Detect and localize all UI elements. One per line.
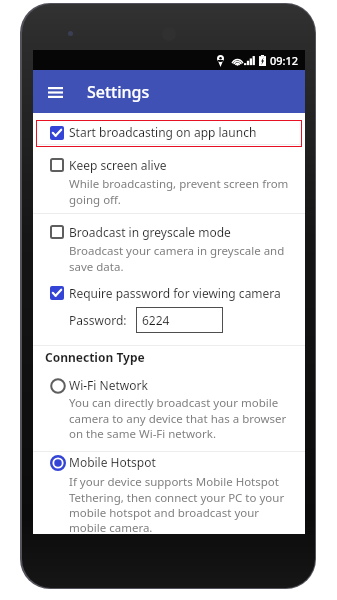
button[interactable]: Start broadcasting on app launch (36, 120, 302, 147)
staticText: Connection Type (45, 349, 145, 365)
staticText: Require password for viewing camera (69, 285, 281, 301)
staticText: Start broadcasting on app launch (69, 124, 257, 140)
staticText: Settings (87, 81, 150, 103)
staticText: If your device supports Mobile Hotspot T… (69, 474, 291, 535)
staticText: While broadcasting, prevent screen from … (69, 176, 293, 207)
staticText: You can directly broadcast your mobile c… (69, 395, 293, 441)
button[interactable]: Broadcast in greyscale mode (33, 220, 305, 276)
button[interactable]: Keep screen alive (33, 153, 305, 208)
button[interactable]: Open navigation menu (40, 77, 70, 107)
staticText: Keep screen alive (69, 157, 167, 173)
staticText: Wi-Fi Network (69, 377, 148, 393)
button[interactable]: Require password for viewing camera (33, 281, 305, 305)
staticText: Broadcast your camera in greyscale and s… (69, 243, 293, 274)
staticText: 6224 (142, 312, 170, 328)
button[interactable]: Wi-Fi Network (33, 372, 305, 444)
staticText: Broadcast in greyscale mode (69, 224, 231, 240)
staticText: Mobile Hotspot (69, 454, 156, 470)
staticText: 09:12 (270, 53, 299, 68)
staticText: Password: (69, 312, 127, 328)
button[interactable]: 6224 (136, 307, 223, 333)
button[interactable]: Mobile Hotspot (33, 449, 305, 539)
